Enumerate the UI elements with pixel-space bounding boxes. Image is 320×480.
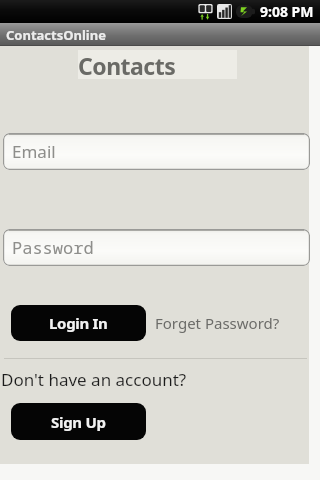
staticText: Forget Password? <box>155 313 280 333</box>
button[interactable]: Email <box>3 133 310 170</box>
staticText: Password <box>12 236 94 259</box>
button[interactable]: Login In <box>11 305 146 341</box>
staticText: Email <box>12 140 56 163</box>
staticText: Contacts online <box>78 50 237 79</box>
staticText: Don't have an account? <box>1 368 187 391</box>
staticText: 9:08 PM <box>260 2 314 21</box>
button[interactable]: Password <box>3 229 310 266</box>
staticText: Sign Up <box>51 412 106 432</box>
button[interactable]: Sign Up <box>11 403 146 440</box>
button[interactable]: Forget Password? <box>155 308 280 338</box>
staticText: ContactsOnline <box>6 26 106 44</box>
staticText: Login In <box>49 313 108 333</box>
